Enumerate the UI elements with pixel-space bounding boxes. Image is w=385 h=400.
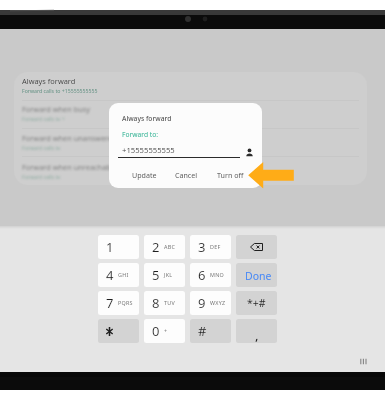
staticText: +15555555555	[122, 145, 175, 155]
staticText: WXYZ	[210, 299, 226, 306]
staticText: GHI	[118, 271, 129, 278]
staticText: 3	[198, 238, 206, 256]
staticText: 6	[198, 266, 206, 284]
staticText: Forward when busy	[22, 104, 91, 114]
staticText: 8	[152, 294, 160, 312]
button[interactable]: Cancel	[167, 167, 205, 182]
button[interactable]: 0	[144, 319, 185, 343]
staticText: ABC	[164, 243, 176, 250]
button[interactable]: Update	[125, 167, 163, 182]
button[interactable]: 6	[190, 263, 231, 287]
staticText: Update	[132, 170, 157, 180]
button[interactable]: 7	[98, 291, 139, 315]
staticText: Turn off	[217, 170, 244, 180]
staticText: DEF	[210, 243, 221, 250]
button[interactable]: ,	[236, 319, 277, 343]
button[interactable]: 2	[144, 235, 185, 259]
staticText: 7	[106, 294, 114, 312]
staticText: Forward calls to	[22, 144, 61, 151]
staticText: ,	[255, 326, 259, 343]
button[interactable]: #	[190, 319, 231, 343]
staticText: TUV	[164, 299, 175, 306]
staticText: 4	[106, 266, 114, 284]
button[interactable]: Done	[236, 263, 277, 287]
staticText: 9	[198, 294, 206, 312]
button[interactable]: More options	[355, 353, 371, 369]
staticText: Forward calls to +	[22, 115, 65, 122]
staticText: +	[164, 327, 168, 334]
button[interactable]: 5	[144, 263, 185, 287]
button[interactable]: Always forward	[14, 72, 367, 100]
staticText: Forward when unreachable	[22, 162, 117, 172]
staticText: Forward when unanswered	[22, 133, 117, 143]
button[interactable]: 8	[144, 291, 185, 315]
other: Pick contact	[245, 148, 254, 157]
staticText: MNO	[210, 271, 224, 278]
button[interactable]: Forward when unreachable	[14, 158, 367, 185]
button[interactable]: Turn off	[207, 167, 254, 182]
staticText: Forward calls to +15555555555	[22, 87, 98, 94]
staticText: 1	[106, 238, 114, 256]
staticText: Forward to:	[122, 130, 159, 139]
button[interactable]: 3	[190, 235, 231, 259]
button[interactable]: *+#	[236, 291, 277, 315]
staticText: *+#	[247, 296, 266, 310]
staticText: PQRS	[118, 299, 133, 306]
button[interactable]: Backspace	[236, 235, 277, 259]
staticText: Always forward	[22, 76, 76, 86]
staticText: 2	[152, 238, 160, 256]
button[interactable]: Forward when unanswered	[14, 129, 367, 157]
staticText: Done	[245, 269, 272, 283]
staticText: Cancel	[175, 170, 198, 180]
button[interactable]	[98, 319, 139, 343]
staticText: 5	[152, 266, 160, 284]
button[interactable]: 4	[98, 263, 139, 287]
staticText: Forward calls to	[22, 173, 61, 180]
staticText: 0	[152, 322, 160, 340]
button[interactable]: Forward when busy	[14, 100, 367, 128]
staticText: #	[198, 322, 207, 340]
button[interactable]: 9	[190, 291, 231, 315]
staticText: Always forward	[122, 114, 172, 123]
button[interactable]: 1	[98, 235, 139, 259]
staticText: JKL	[164, 271, 173, 278]
